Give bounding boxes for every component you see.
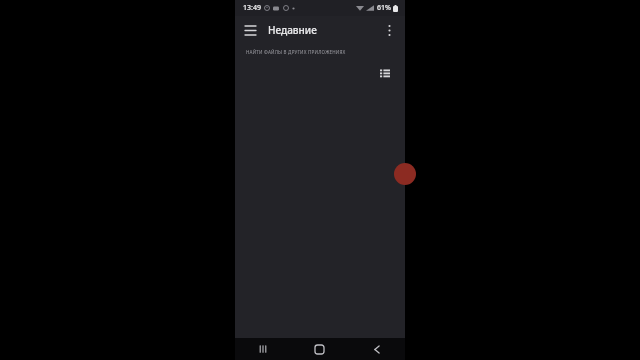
button[interactable]: Back — [348, 338, 405, 360]
button[interactable]: Create — [394, 163, 416, 185]
staticText: 61% — [377, 3, 391, 13]
button[interactable]: НАЙТИ ФАЙЛЫ В ДРУГИХ ПРИЛОЖЕНИЯХ — [235, 44, 405, 60]
button[interactable]: More options — [378, 19, 400, 41]
button[interactable]: Home — [291, 338, 348, 360]
staticText: НАЙТИ ФАЙЛЫ В ДРУГИХ ПРИЛОЖЕНИЯХ — [246, 49, 346, 55]
staticText: Недавние — [268, 23, 317, 37]
staticText: 13:49 — [243, 3, 261, 13]
button[interactable]: Switch view — [376, 64, 394, 82]
button[interactable]: Recent apps — [235, 338, 291, 360]
button[interactable]: Open navigation drawer — [239, 19, 261, 41]
